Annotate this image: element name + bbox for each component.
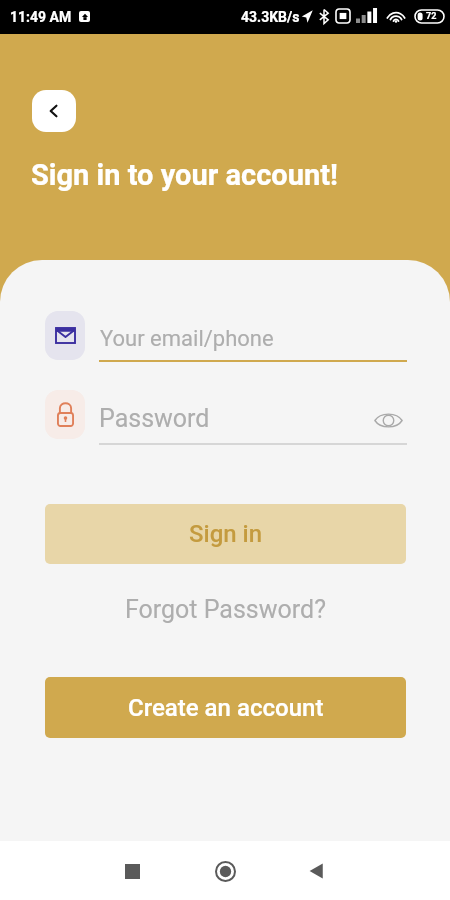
button[interactable]: Forgot Password? xyxy=(125,595,326,624)
staticText: 43.3KB/s xyxy=(241,9,300,25)
button[interactable]: Create an account xyxy=(45,677,406,738)
staticText: Sign in xyxy=(189,520,263,548)
staticText: 72 xyxy=(426,11,437,22)
button[interactable]: Sign in xyxy=(45,504,406,564)
staticText: 11:49 AM xyxy=(10,9,72,25)
button[interactable]: Recent apps xyxy=(112,851,152,891)
staticText: Create an account xyxy=(128,694,324,722)
staticText: Sign in to your account! xyxy=(31,158,338,192)
button[interactable]: Back xyxy=(296,851,336,891)
staticText: Your email/phone xyxy=(100,326,274,352)
button[interactable]: Back xyxy=(32,90,76,132)
staticText: Password xyxy=(99,404,210,433)
button[interactable]: Home xyxy=(205,851,245,891)
button[interactable]: Show password xyxy=(371,407,406,433)
